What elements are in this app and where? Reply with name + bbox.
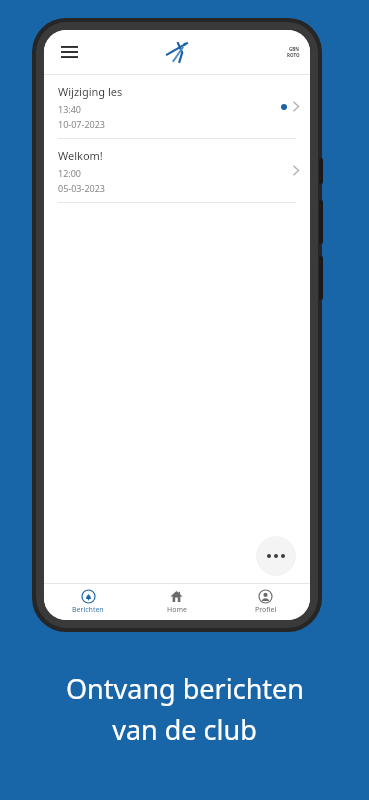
- staticText: Profiel: [255, 605, 277, 615]
- button[interactable]: Menu: [54, 37, 84, 67]
- button[interactable]: Meer opties: [256, 536, 296, 576]
- staticText: Ontvang berichten: [66, 670, 304, 707]
- button[interactable]: GBN: [287, 46, 300, 58]
- staticText: 10-07-2023: [58, 118, 105, 130]
- button[interactable]: Logo: [160, 35, 194, 69]
- staticText: 12:00: [58, 167, 82, 179]
- staticText: ROTO: [287, 52, 300, 58]
- staticText: 05-03-2023: [58, 182, 105, 194]
- staticText: Wijziging les: [58, 84, 123, 99]
- button[interactable]: Home: [132, 587, 221, 618]
- staticText: 13:40: [58, 103, 82, 115]
- staticText: Welkom!: [58, 148, 103, 163]
- staticText: Home: [167, 605, 187, 615]
- staticText: van de club: [112, 711, 257, 748]
- button[interactable]: Welkom!: [44, 139, 310, 202]
- button[interactable]: Berichten: [44, 587, 132, 618]
- staticText: GBN: [289, 46, 299, 52]
- staticText: Berichten: [72, 605, 104, 615]
- button[interactable]: Wijziging les: [44, 75, 310, 138]
- button[interactable]: Profiel: [221, 587, 310, 618]
